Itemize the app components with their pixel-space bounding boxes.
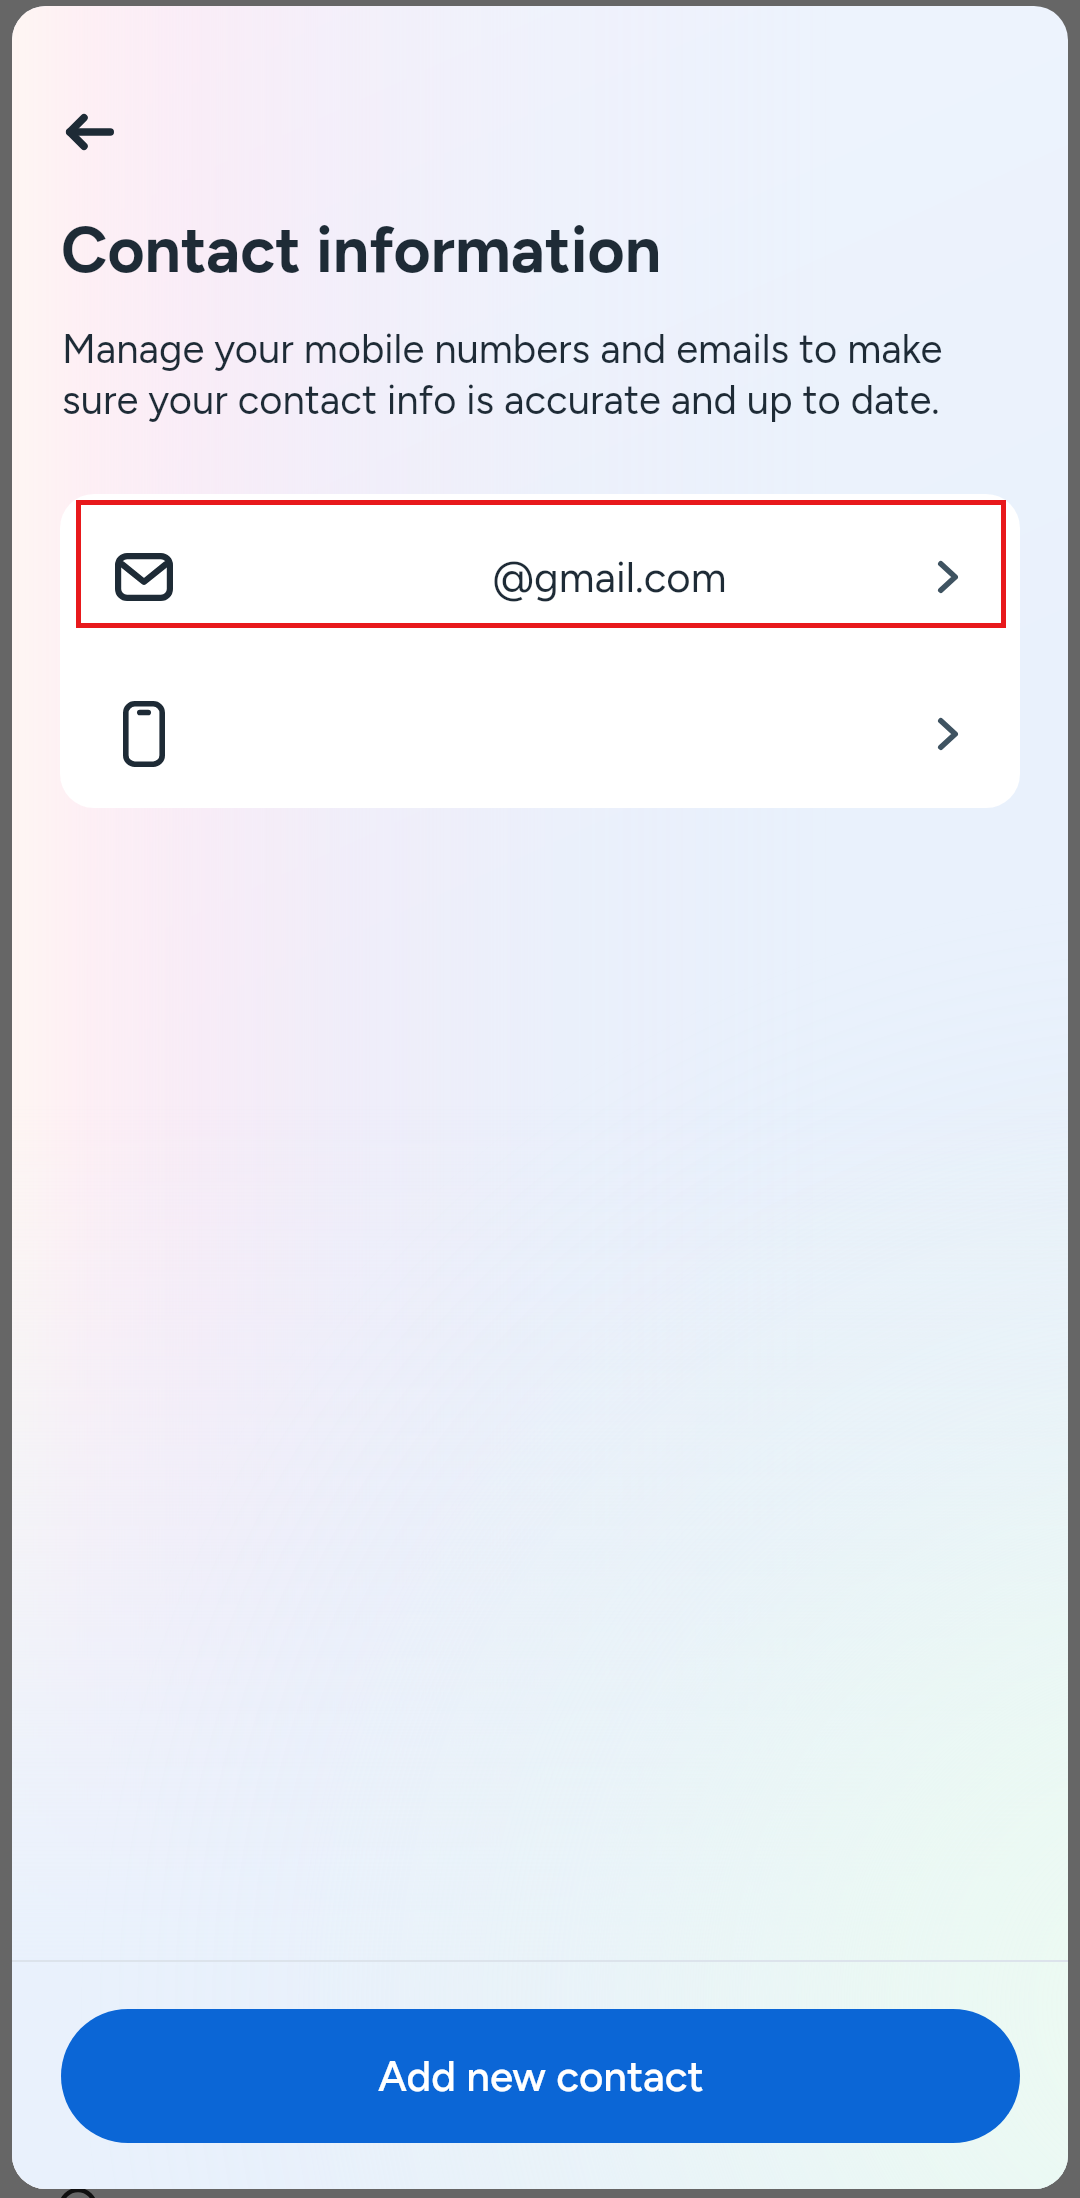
button[interactable]	[60, 659, 1020, 808]
button[interactable]: @gmail.com	[60, 494, 1020, 659]
staticText: Contact information	[61, 211, 661, 288]
button[interactable]: Add new contact	[61, 2009, 1020, 2143]
staticText: Manage your mobile numbers and emails to…	[62, 325, 1002, 424]
button[interactable]: Back	[66, 96, 162, 168]
staticText: Add new contact	[378, 2051, 704, 2101]
staticText: @gmail.com	[281, 552, 938, 602]
